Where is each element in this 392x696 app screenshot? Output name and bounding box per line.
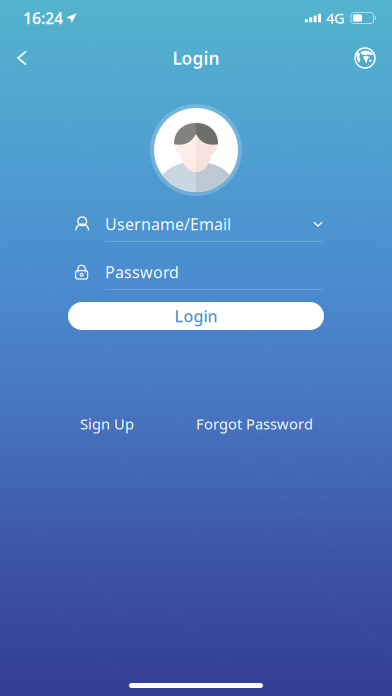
staticText: Login (174, 305, 217, 327)
staticText: 16:24 (23, 7, 63, 29)
button[interactable]: Sign Up (80, 414, 134, 433)
staticText: 4G (326, 8, 345, 28)
button[interactable]: Login (68, 302, 324, 330)
button[interactable]: Back (2, 36, 42, 80)
button[interactable]: Language (345, 36, 385, 80)
staticText: Forgot Password (196, 414, 313, 433)
staticText: Username/Email (105, 213, 231, 235)
staticText: Sign Up (80, 414, 134, 433)
staticText: Login (172, 46, 219, 69)
button[interactable]: Forgot Password (196, 414, 313, 433)
staticText: Password (105, 261, 179, 283)
